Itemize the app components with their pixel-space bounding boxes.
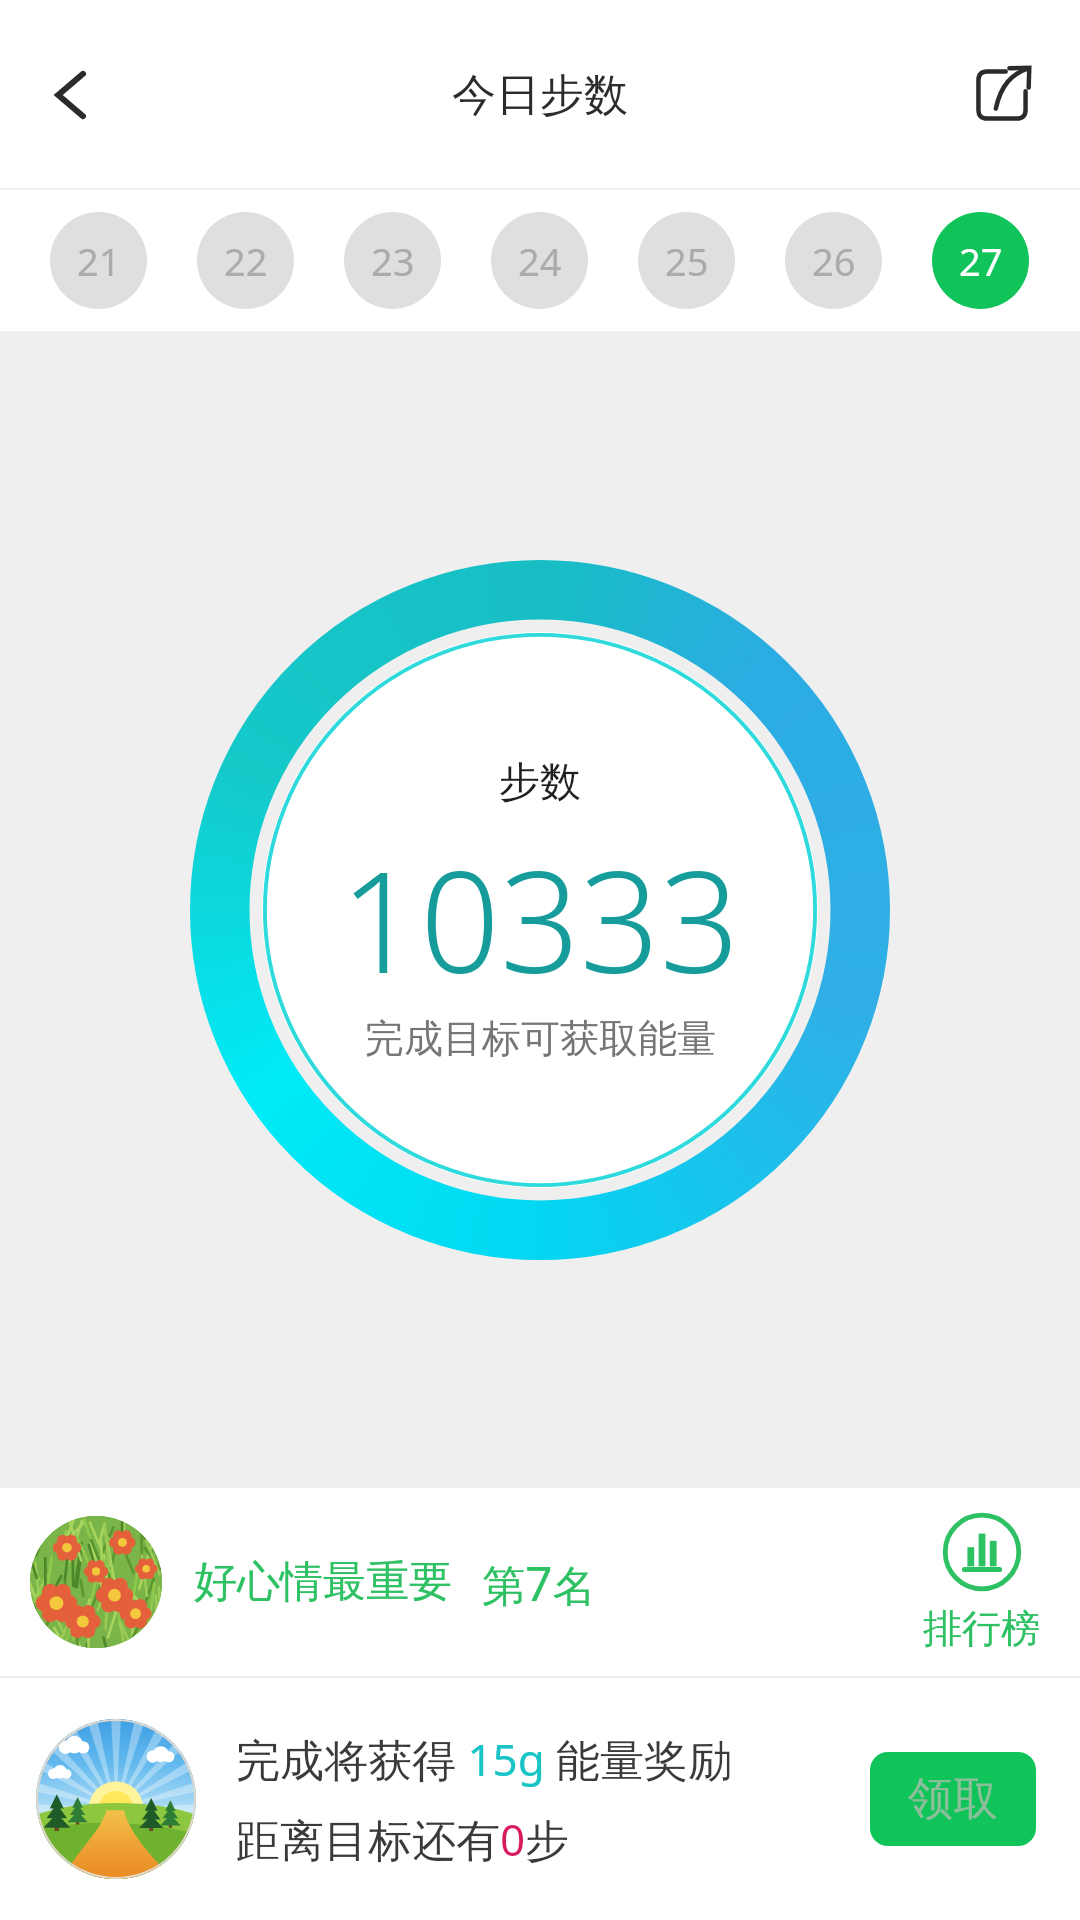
button[interactable]: 26	[785, 212, 882, 309]
staticText: 26	[812, 235, 856, 287]
button[interactable]: 22	[197, 212, 294, 309]
button[interactable]: 好心情最重要	[0, 1488, 1080, 1676]
staticText: 完成将获得 15g 能量奖励	[236, 1729, 733, 1789]
staticText: 24	[518, 235, 562, 287]
staticText: 完成目标可获取能量	[365, 1014, 716, 1063]
staticText: 好心情最重要	[194, 1555, 452, 1609]
staticText: 21	[77, 235, 121, 287]
staticText: 25	[665, 235, 709, 287]
button[interactable]: 23	[344, 212, 441, 309]
button[interactable]: 24	[491, 212, 588, 309]
staticText: 领取	[908, 1771, 998, 1828]
button[interactable]: 领取	[870, 1752, 1036, 1846]
staticText: 排行榜	[923, 1604, 1040, 1653]
button[interactable]: Back	[22, 45, 122, 145]
staticText: 27	[959, 235, 1003, 287]
staticText: 22	[224, 235, 268, 287]
button[interactable]: 排行榜	[923, 1512, 1040, 1653]
staticText: 今日步数	[452, 68, 628, 123]
button[interactable]: 27	[932, 212, 1029, 309]
staticText: 23	[371, 235, 415, 287]
button[interactable]: Share	[950, 43, 1054, 147]
button[interactable]: 25	[638, 212, 735, 309]
button[interactable]: 21	[50, 212, 147, 309]
staticText: 第7名	[482, 1550, 596, 1615]
staticText: 步数	[499, 757, 581, 809]
staticText: 10333	[340, 823, 740, 1014]
staticText: 距离目标还有0步	[236, 1809, 570, 1869]
